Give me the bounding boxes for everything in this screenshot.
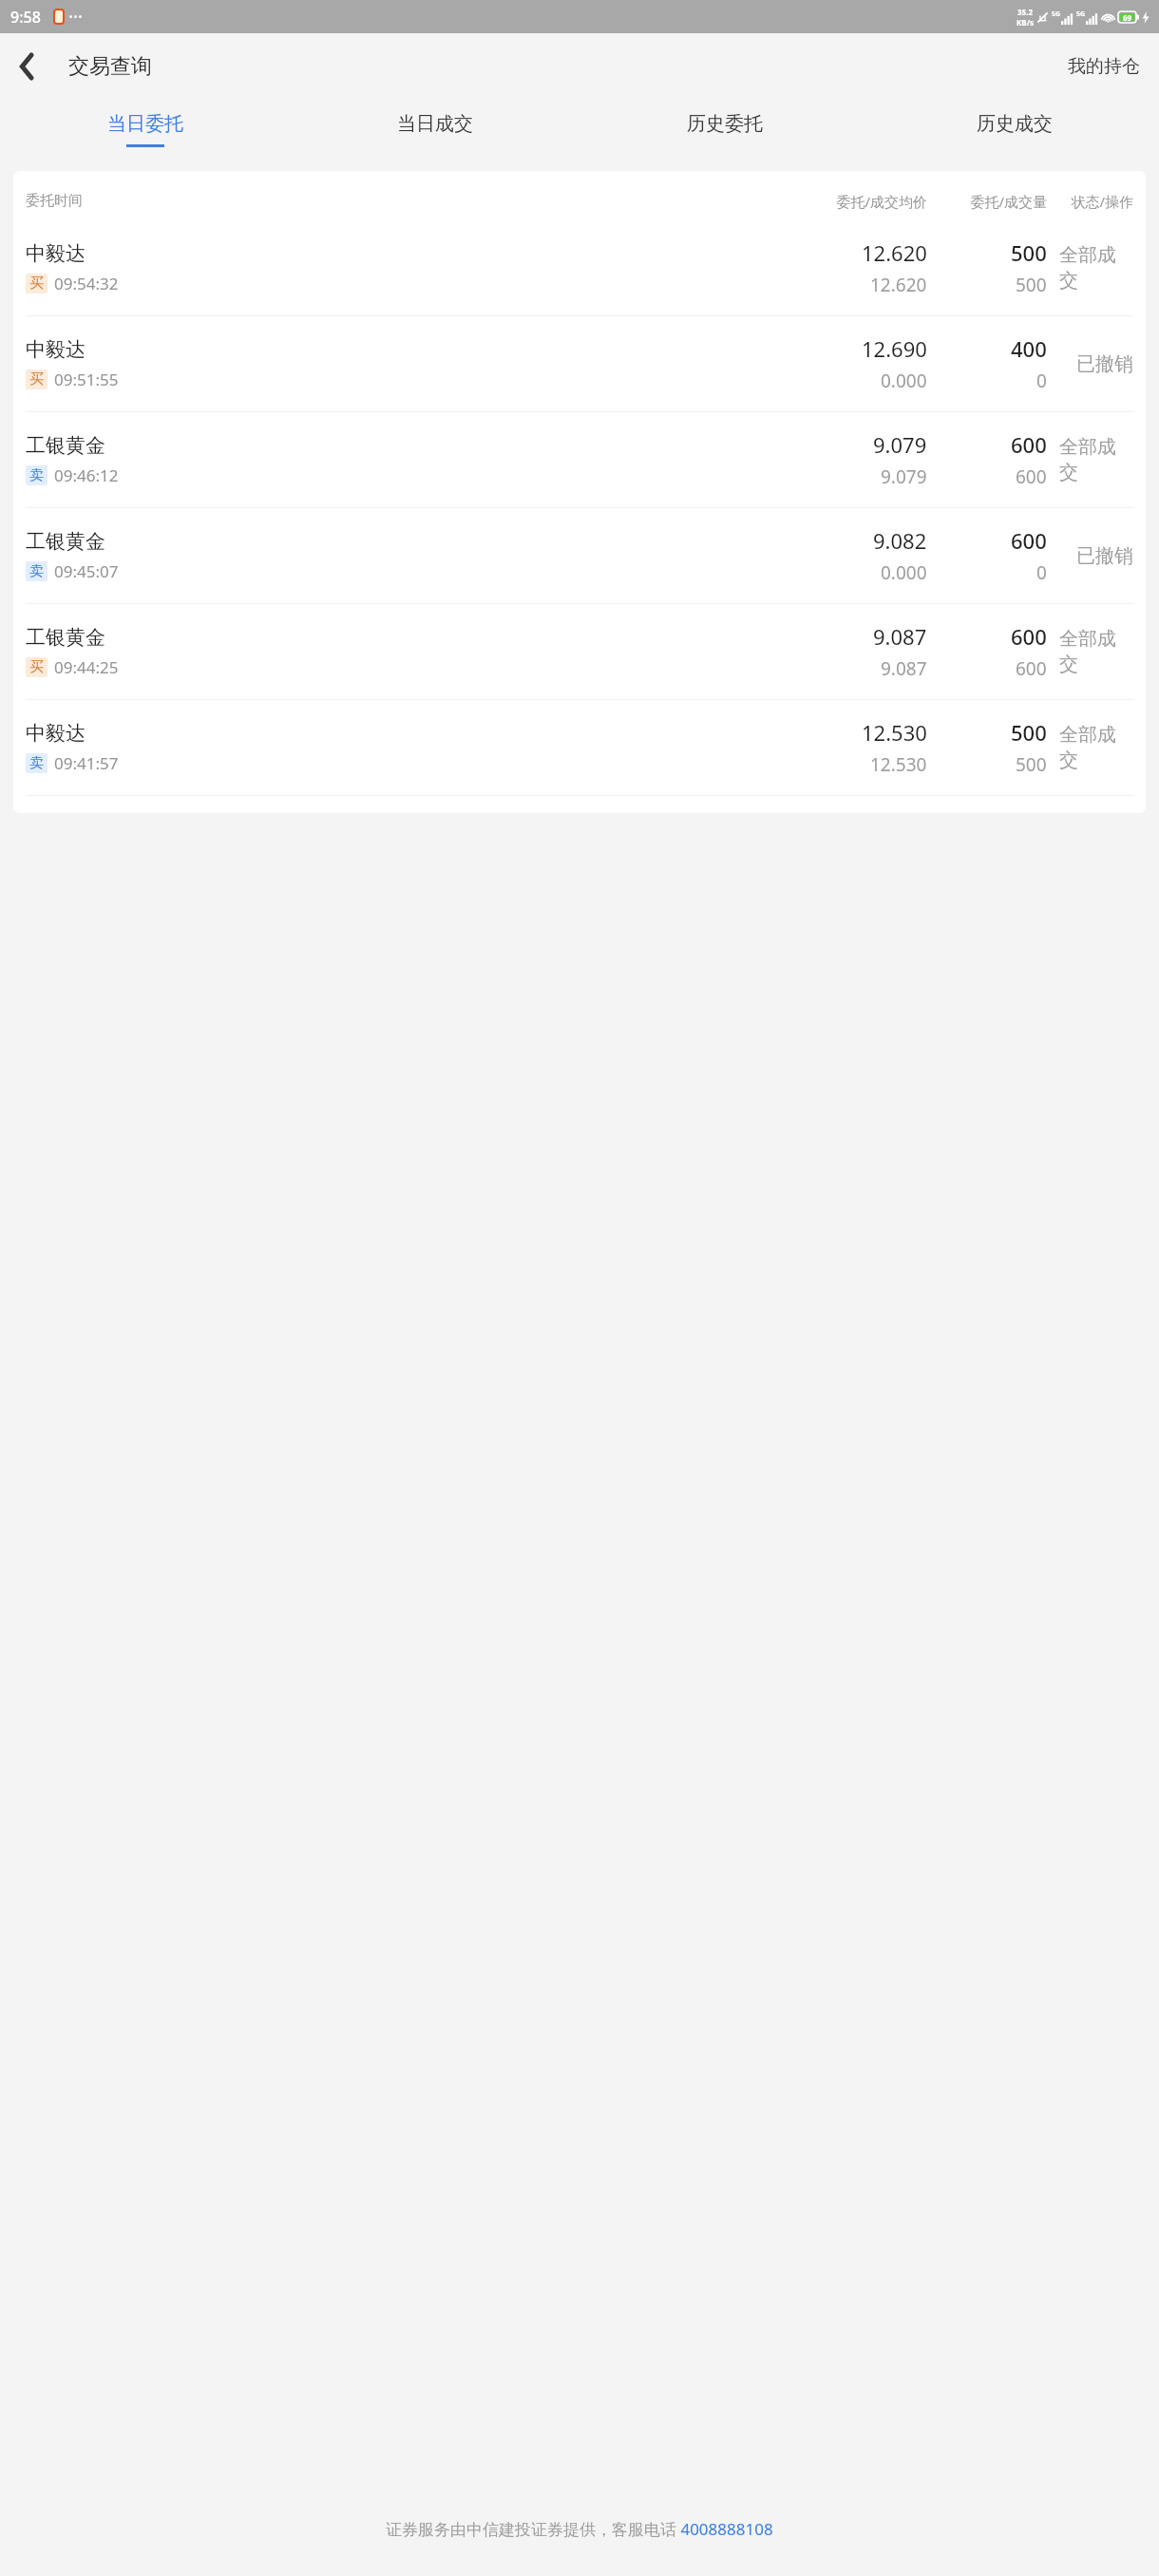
staticText: 委托/成交量	[948, 192, 1047, 211]
staticText: 历史成交	[977, 112, 1053, 136]
staticText: 9.087	[881, 656, 927, 681]
staticText: 9.082	[873, 526, 927, 555]
staticText: 买	[29, 658, 44, 676]
staticText: 0.000	[881, 560, 927, 585]
staticText: 09:46:12	[54, 464, 119, 486]
button[interactable]: 中毅达	[13, 316, 1146, 411]
staticText: 500	[1011, 718, 1047, 747]
button[interactable]: 当日委托	[0, 100, 290, 159]
button[interactable]: 工银黄金	[13, 412, 1146, 507]
staticText: 中毅达	[26, 337, 85, 362]
staticText: 600	[1016, 464, 1047, 489]
staticText: 12.620	[862, 238, 927, 267]
button[interactable]: 历史委托	[579, 100, 869, 159]
staticText: 12.530	[870, 752, 927, 777]
staticText: 0.000	[881, 369, 927, 393]
staticText: 400	[1011, 334, 1047, 363]
staticText: 600	[1011, 430, 1047, 459]
button[interactable]: 当日成交	[290, 100, 579, 159]
staticText: 5G	[1076, 9, 1086, 19]
staticText: 09:54:32	[54, 273, 119, 294]
staticText: 卖	[29, 562, 44, 580]
staticText: 35.2	[1017, 7, 1033, 17]
staticText: 0	[1036, 369, 1047, 393]
staticText: 买	[29, 275, 44, 293]
staticText: 600	[1016, 656, 1047, 681]
staticText: 工银黄金	[26, 625, 105, 650]
staticText: 09:51:55	[54, 369, 119, 390]
staticText: 工银黄金	[26, 433, 105, 458]
staticText: 500	[1016, 752, 1047, 777]
staticText: 买	[29, 370, 44, 388]
staticText: 全部成交	[1059, 243, 1133, 293]
staticText: 12.530	[862, 718, 927, 747]
staticText: 9:58	[10, 7, 41, 28]
button[interactable]: Back	[0, 40, 53, 93]
staticText: 状态/操作	[1059, 192, 1133, 211]
staticText: 当日委托	[107, 112, 183, 136]
staticText: 69	[1123, 12, 1132, 23]
staticText: 已撤销	[1076, 352, 1133, 376]
staticText: 卖	[29, 466, 44, 484]
staticText: 12.690	[862, 334, 927, 363]
staticText: 中毅达	[26, 241, 85, 266]
button[interactable]: 中毅达	[13, 700, 1146, 795]
staticText: 证券服务由中信建投证券提供，客服电话 4008888108	[386, 2518, 773, 2540]
staticText: 工银黄金	[26, 529, 105, 554]
staticText: 9.079	[873, 430, 927, 459]
staticText: 委托/成交均价	[808, 192, 927, 211]
staticText: 12.620	[870, 273, 927, 297]
staticText: 9.087	[873, 622, 927, 651]
staticText: 500	[1016, 273, 1047, 297]
staticText: 600	[1011, 526, 1047, 555]
button[interactable]: 历史成交	[869, 100, 1159, 159]
staticText: 500	[1011, 238, 1047, 267]
button[interactable]: 中毅达	[13, 220, 1146, 315]
staticText: 当日成交	[397, 112, 473, 136]
button[interactable]: 我的持仓	[1049, 44, 1159, 89]
staticText: 已撤销	[1076, 544, 1133, 568]
button[interactable]: 工银黄金	[13, 508, 1146, 603]
staticText: 交易查询	[68, 53, 152, 80]
staticText: 我的持仓	[1068, 55, 1140, 78]
staticText: 委托时间	[26, 192, 808, 210]
staticText: KB/s	[1016, 17, 1034, 28]
staticText: 历史委托	[687, 112, 763, 136]
staticText: 09:45:07	[54, 560, 119, 582]
staticText: 9.079	[881, 464, 927, 489]
button[interactable]: 工银黄金	[13, 604, 1146, 699]
staticText: 全部成交	[1059, 627, 1133, 676]
staticText: 中毅达	[26, 721, 85, 746]
staticText: 5G	[1052, 9, 1061, 19]
staticText: 09:41:57	[54, 752, 119, 774]
staticText: 0	[1036, 560, 1047, 585]
staticText: 600	[1011, 622, 1047, 651]
staticText: 全部成交	[1059, 723, 1133, 772]
staticText: 卖	[29, 754, 44, 772]
staticText: 全部成交	[1059, 435, 1133, 484]
staticText: 09:44:25	[54, 656, 119, 678]
